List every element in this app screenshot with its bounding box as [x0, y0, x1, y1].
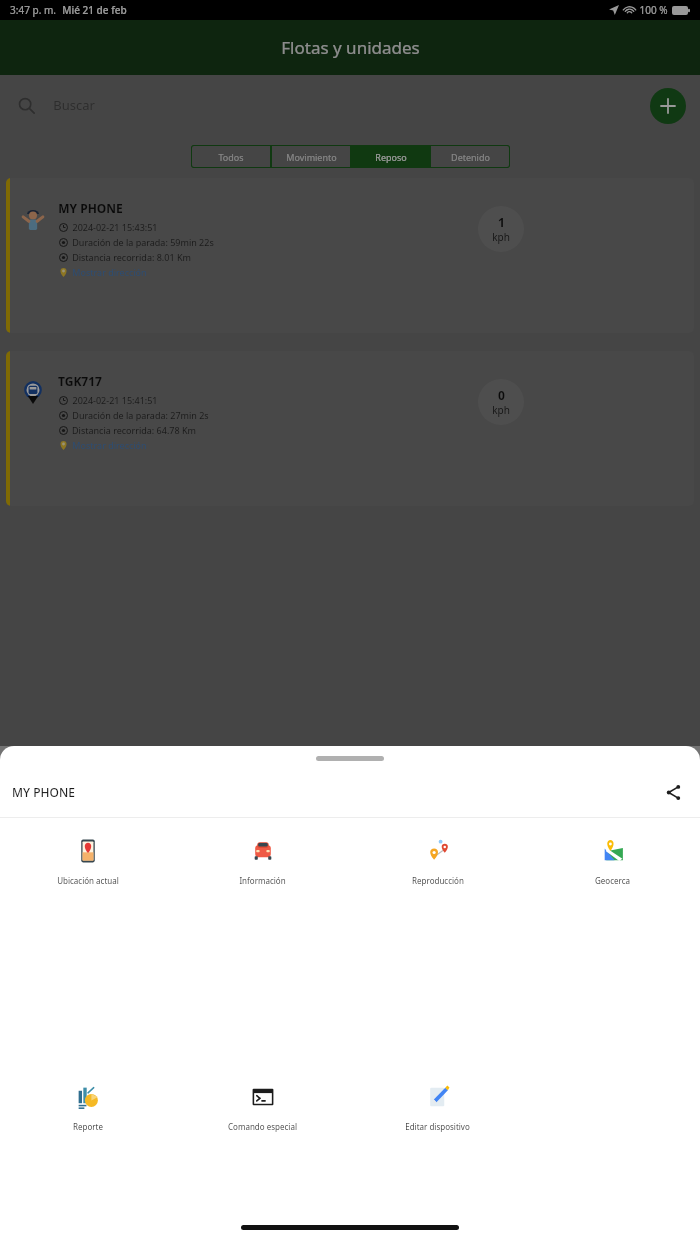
staticText: Mostrar dirección — [72, 266, 147, 278]
staticText: Mié 21 de feb — [62, 3, 127, 17]
staticText: Ubicación actual — [57, 875, 119, 886]
button[interactable]: Compartir — [658, 777, 688, 807]
button[interactable]: Información — [175, 832, 350, 890]
staticText: Mostrar dirección — [72, 439, 147, 451]
staticText: Duración de la parada: 27min 2s — [72, 409, 209, 421]
staticText: MY PHONE — [58, 200, 123, 216]
staticText: Distancia recorrida: 64.78 Km — [72, 424, 196, 436]
button[interactable]: Editar dispositivo — [350, 1078, 525, 1136]
staticText: Flotas y unidades — [281, 36, 420, 59]
button[interactable]: Reproducción — [350, 832, 525, 890]
button[interactable]: Geocerca — [525, 832, 700, 890]
staticText: 2024-02-21 15:41:51 — [72, 394, 158, 406]
staticText: TGK717 — [58, 373, 102, 389]
staticText: Duración de la parada: 59min 22s — [72, 236, 214, 248]
button[interactable]: Reposo — [351, 145, 430, 168]
staticText: Distancia recorrida: 8.01 Km — [72, 251, 191, 263]
staticText: kph — [492, 403, 510, 417]
staticText: Reposo — [375, 151, 407, 163]
staticText: MY PHONE — [12, 784, 75, 800]
staticText: kph — [492, 230, 510, 244]
staticText: 2024-02-21 15:43:51 — [72, 221, 158, 233]
button[interactable]: Ubicación actual — [0, 832, 175, 890]
staticText: Geocerca — [595, 875, 630, 886]
staticText: Todos — [218, 151, 244, 163]
button[interactable]: Mostrar dirección — [72, 439, 147, 451]
staticText: Buscar — [53, 96, 95, 114]
button[interactable]: Buscar — [6, 79, 694, 131]
button[interactable]: Mostrar dirección — [72, 266, 147, 278]
staticText: Reporte — [73, 1121, 103, 1132]
staticText: Editar dispositivo — [405, 1121, 470, 1132]
button[interactable]: MY PHONE — [6, 178, 694, 333]
button[interactable]: Movimiento — [271, 145, 351, 168]
staticText: 100 % — [639, 3, 668, 17]
button[interactable]: Todos — [191, 145, 271, 168]
staticText: Reproducción — [412, 875, 464, 886]
staticText: Información — [239, 875, 286, 886]
staticText: Comando especial — [228, 1121, 297, 1132]
button[interactable]: TGK717 — [6, 351, 694, 506]
button[interactable]: Reporte — [0, 1078, 175, 1136]
staticText: Detenido — [451, 151, 490, 163]
staticText: 3:47 p. m. — [10, 3, 56, 17]
button[interactable]: Comando especial — [175, 1078, 350, 1136]
button[interactable]: Detenido — [430, 145, 510, 168]
staticText: 0 — [498, 387, 505, 403]
staticText: 1 — [498, 214, 505, 230]
other: Buscar — [18, 97, 35, 114]
button[interactable]: Agregar — [650, 88, 686, 124]
staticText: Movimiento — [286, 151, 337, 163]
